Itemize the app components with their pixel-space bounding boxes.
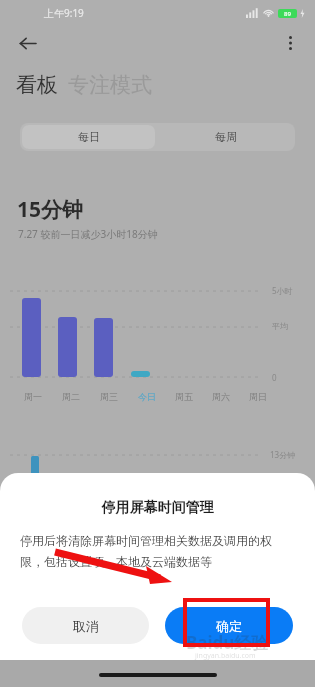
button[interactable]: 专注模式 [68, 72, 152, 98]
button[interactable]: 看板 [16, 72, 58, 98]
button[interactable]: 取消 [22, 607, 149, 644]
staticText: 89 [284, 10, 291, 18]
staticText: 13分钟 [270, 449, 296, 460]
staticText: 周日 [249, 391, 267, 402]
staticText: 平均 [272, 321, 288, 331]
staticText: 每日 [78, 130, 100, 144]
staticText: 周五 [175, 391, 193, 402]
button[interactable]: More options [275, 28, 305, 58]
button[interactable]: 确定 [165, 607, 293, 644]
button[interactable]: 每日 [22, 125, 155, 149]
staticText: 周三 [100, 391, 118, 402]
staticText: 周一 [24, 391, 42, 402]
staticText: 周六 [212, 391, 230, 402]
staticText: 取消 [73, 618, 99, 634]
staticText: 停用后将清除屏幕时间管理相关数据及调用的权限，包括设置项、本地及云端数据等 [20, 533, 295, 569]
staticText: 0 [272, 372, 277, 383]
button[interactable]: Back [12, 28, 42, 58]
staticText: 15分钟 [17, 195, 84, 224]
staticText: 5小时 [272, 285, 293, 296]
staticText: 每周 [215, 130, 237, 144]
staticText: 停用屏幕时间管理 [0, 499, 315, 517]
staticText: 上午9:19 [44, 6, 84, 20]
staticText: 确定 [216, 618, 242, 634]
staticText: jingyan.baidu.com [195, 651, 256, 661]
button[interactable]: 每周 [157, 123, 295, 151]
staticText: 7.27 较前一日减少3小时18分钟 [18, 227, 158, 241]
staticText: 周二 [62, 391, 80, 402]
staticText: 今日 [138, 391, 156, 402]
staticText: Baidu经验 [186, 631, 269, 654]
